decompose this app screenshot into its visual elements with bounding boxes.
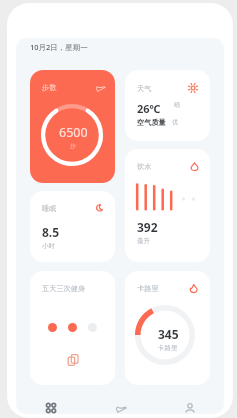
staticText: 26℃ <box>137 101 161 116</box>
staticText: 卡路里 <box>158 344 178 352</box>
staticText: 步 <box>70 142 76 150</box>
staticText: 卡路里 <box>137 284 159 293</box>
staticText: 小时 <box>42 242 55 250</box>
staticText: 345 <box>158 326 179 342</box>
staticText: 6500 <box>59 124 88 141</box>
staticText: 毫升 <box>137 237 150 245</box>
button[interactable]: Dashboard <box>16 388 86 414</box>
button[interactable]: 饮水 <box>125 149 210 262</box>
staticText: 步数 <box>42 83 57 92</box>
button[interactable]: 卡路里 <box>125 271 210 385</box>
staticText: 睡眠 <box>42 204 57 213</box>
staticText: 五天三次健身 <box>42 284 86 293</box>
staticText: 天气 <box>137 84 152 93</box>
button[interactable]: 步数 <box>30 70 115 183</box>
button[interactable]: 天气 <box>125 70 210 141</box>
staticText: 8.5 <box>42 224 60 240</box>
staticText: 饮水 <box>137 162 152 171</box>
button[interactable]: 睡眠 <box>30 191 115 262</box>
button[interactable]: Profile <box>155 388 224 414</box>
staticText: 10月2日，星期一 <box>30 42 88 52</box>
staticText: 392 <box>137 219 158 235</box>
staticText: 空气质量 <box>137 118 166 127</box>
staticText: 优 <box>172 118 178 126</box>
button[interactable]: Activity <box>86 388 155 414</box>
staticText: 晴 <box>174 101 180 109</box>
button[interactable]: 五天三次健身 <box>30 271 115 385</box>
